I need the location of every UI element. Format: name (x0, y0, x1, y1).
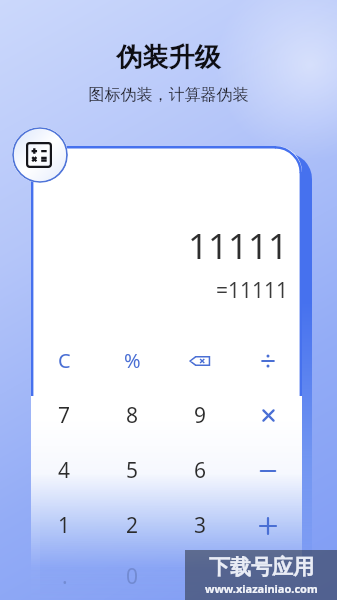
button[interactable]: 4 (31, 443, 98, 498)
staticText: . (62, 562, 68, 591)
staticText: 2 (126, 511, 139, 540)
button[interactable]: % (98, 333, 166, 388)
button[interactable]: Minus (234, 443, 302, 498)
staticText: 0 (126, 562, 139, 591)
staticText: www.xiazainiao.com (205, 581, 318, 596)
staticText: 下载号应用 (209, 554, 314, 580)
staticText: 6 (194, 456, 207, 485)
button[interactable]: Multiply (234, 388, 302, 443)
staticText: % (124, 347, 141, 374)
staticText: 7 (58, 401, 71, 430)
staticText: 8 (126, 401, 139, 430)
staticText: 1 (58, 511, 71, 540)
staticText: 3 (194, 511, 207, 540)
staticText: 5 (126, 456, 139, 485)
button[interactable]: 5 (98, 443, 166, 498)
button[interactable]: 8 (98, 388, 166, 443)
button[interactable] (234, 553, 302, 600)
staticText: 11111 (31, 222, 288, 270)
button[interactable]: 1 (31, 498, 98, 553)
button[interactable]: C (31, 333, 98, 388)
button[interactable]: 9 (166, 388, 234, 443)
button[interactable] (166, 553, 234, 600)
button[interactable]: Plus (234, 498, 302, 553)
staticText: 4 (58, 456, 71, 485)
button[interactable]: Divide (234, 333, 302, 388)
button[interactable]: Calculator disguise (12, 127, 68, 183)
staticText: C (58, 347, 71, 374)
button[interactable]: 6 (166, 443, 234, 498)
button[interactable]: 2 (98, 498, 166, 553)
button[interactable]: 0 (98, 553, 166, 600)
staticText: 图标伪装，计算器伪装 (0, 85, 337, 105)
button[interactable]: 3 (166, 498, 234, 553)
staticText: 伪装升级 (0, 41, 337, 74)
staticText: =11111 (31, 276, 288, 305)
staticText: 9 (194, 401, 207, 430)
button[interactable]: 7 (31, 388, 98, 443)
button[interactable]: Backspace (166, 333, 234, 388)
button[interactable]: . (31, 553, 98, 600)
